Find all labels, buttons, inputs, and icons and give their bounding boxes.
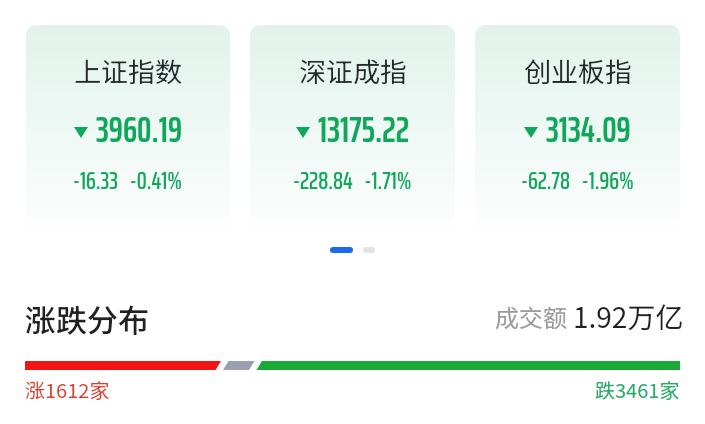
staticText: 涨跌分布 <box>25 296 149 341</box>
staticText: 上证指数 <box>74 51 182 90</box>
staticText: 跌3461家 <box>595 375 680 404</box>
staticText: 深证成指 <box>299 51 407 90</box>
staticText: 创业板指 <box>524 51 632 90</box>
staticText: -16.33 -0.41% <box>73 161 183 200</box>
staticText: 成交额 <box>495 299 567 334</box>
button[interactable]: 创业板指 <box>475 25 680 235</box>
staticText: -62.78 -1.96% <box>521 161 634 200</box>
staticText: 涨1612家 <box>25 375 110 404</box>
button[interactable]: 深证成指 <box>250 25 455 235</box>
button[interactable]: 上证指数 <box>26 25 230 235</box>
staticText: 13175.22 <box>318 101 410 158</box>
other: Page 1 <box>330 247 353 253</box>
staticText: 3960.19 <box>96 101 183 158</box>
other: Page 2 <box>363 247 375 253</box>
staticText: 1.92万亿 <box>573 296 684 337</box>
staticText: -228.84 -1.71% <box>293 161 412 200</box>
staticText: 3134.09 <box>546 101 631 158</box>
